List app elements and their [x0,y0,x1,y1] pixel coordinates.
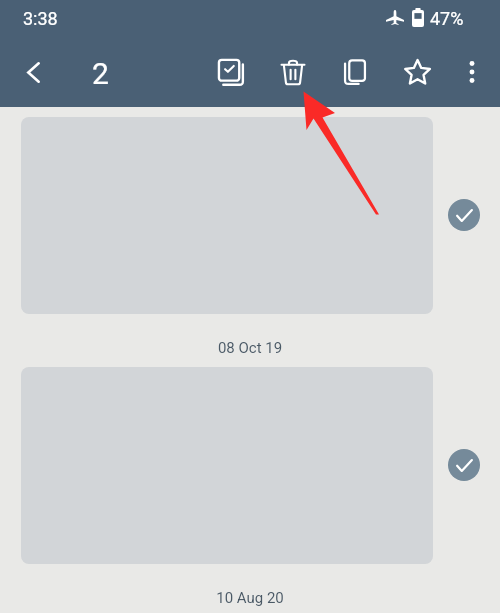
staticText: 10 Aug 20 [0,589,500,607]
button[interactable]: More options [451,51,493,93]
button[interactable]: Copy [334,51,376,93]
button[interactable]: Selected [448,449,480,481]
button[interactable]: Delete [272,51,314,93]
button[interactable]: Selected [448,199,480,231]
button[interactable]: Select all [209,51,251,93]
staticText: 08 Oct 19 [0,339,500,357]
staticText: 3:38 [23,8,58,29]
button[interactable]: Back [13,52,53,92]
button[interactable]: 2 [92,56,109,91]
staticText: 47% [430,8,464,29]
button[interactable]: Favorite [396,51,438,93]
button[interactable] [21,117,433,314]
